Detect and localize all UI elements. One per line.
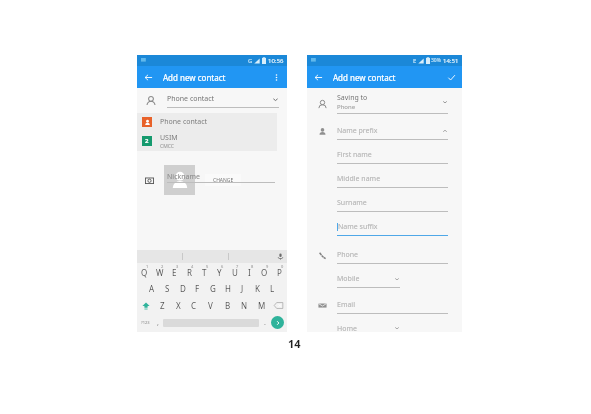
- button[interactable]: Mobile: [307, 269, 462, 293]
- button[interactable]: A: [144, 280, 160, 297]
- staticText: 3: [176, 264, 179, 269]
- button[interactable]: 8: [242, 263, 257, 280]
- button[interactable]: M: [253, 297, 270, 314]
- button[interactable]: Voice input: [274, 250, 287, 263]
- staticText: USIM: [160, 133, 178, 143]
- button[interactable]: Email: [307, 295, 462, 319]
- button[interactable]: D: [175, 280, 190, 297]
- button[interactable]: ?123: [137, 314, 153, 331]
- staticText: 8: [251, 264, 254, 269]
- staticText: 14:51: [443, 57, 459, 65]
- button[interactable]: Phone contact: [137, 113, 277, 131]
- staticText: L: [270, 283, 275, 294]
- staticText: B: [225, 300, 231, 311]
- staticText: Email: [337, 300, 448, 310]
- staticText: K: [255, 283, 260, 294]
- button[interactable]: B: [219, 297, 236, 314]
- staticText: CMCC: [160, 143, 174, 150]
- staticText: .: [264, 318, 266, 328]
- button[interactable]: Back: [307, 66, 329, 88]
- staticText: 2: [161, 264, 164, 269]
- staticText: S: [165, 283, 170, 294]
- staticText: Mobile: [337, 274, 394, 284]
- staticText: Phone: [337, 103, 356, 111]
- staticText: 4: [191, 264, 194, 269]
- staticText: C: [191, 300, 197, 311]
- staticText: Nickname: [167, 172, 200, 182]
- staticText: E: [172, 267, 177, 278]
- button[interactable]: 4: [182, 263, 197, 280]
- staticText: F: [195, 283, 200, 294]
- staticText: 10:56: [268, 57, 284, 65]
- button[interactable]: ,: [153, 314, 163, 331]
- staticText: D: [180, 283, 186, 294]
- button[interactable]: Middle name: [307, 169, 462, 193]
- button[interactable]: H: [220, 280, 235, 297]
- button[interactable]: X: [170, 297, 186, 314]
- button[interactable]: Saving to: [307, 93, 462, 115]
- button[interactable]: 6: [212, 263, 227, 280]
- button[interactable]: F: [190, 280, 205, 297]
- staticText: 5: [206, 264, 209, 269]
- staticText: Add new contact: [163, 72, 265, 83]
- button[interactable]: Backspace: [270, 297, 287, 314]
- button[interactable]: CHANGE: [205, 174, 241, 186]
- staticText: V: [208, 300, 213, 311]
- staticText: Y: [217, 267, 222, 278]
- button[interactable]: First name: [307, 145, 462, 169]
- button[interactable]: G: [205, 280, 220, 297]
- button[interactable]: J: [235, 280, 250, 297]
- staticText: O: [261, 267, 268, 278]
- staticText: A: [149, 283, 155, 294]
- staticText: 9: [266, 264, 269, 269]
- staticText: ,: [157, 318, 159, 328]
- button[interactable]: N: [236, 297, 253, 314]
- button[interactable]: Phone contact: [137, 88, 287, 114]
- button[interactable]: 9: [257, 263, 272, 280]
- button[interactable]: Back: [137, 66, 159, 88]
- staticText: CHANGE: [213, 177, 234, 184]
- button[interactable]: Z: [154, 297, 170, 314]
- button[interactable]: Name prefix: [307, 121, 462, 145]
- staticText: 30%: [431, 57, 441, 64]
- button[interactable]: Home: [307, 319, 462, 332]
- staticText: Phone: [337, 250, 448, 260]
- staticText: 7: [236, 264, 239, 269]
- button[interactable]: 7: [227, 263, 242, 280]
- button[interactable]: 2: [152, 263, 167, 280]
- staticText: Q: [141, 267, 148, 278]
- staticText: Name suffix: [338, 222, 448, 232]
- button[interactable]: More options: [265, 66, 287, 88]
- button[interactable]: Shift: [137, 297, 154, 314]
- staticText: E: [413, 57, 417, 65]
- staticText: Home: [337, 324, 394, 332]
- button[interactable]: 5: [197, 263, 212, 280]
- button[interactable]: 1: [137, 263, 152, 280]
- button[interactable]: Save: [440, 66, 462, 88]
- staticText: Z: [160, 300, 165, 311]
- button[interactable]: Surname: [307, 193, 462, 217]
- staticText: U: [232, 267, 238, 278]
- staticText: Surname: [337, 198, 448, 208]
- button[interactable]: L: [265, 280, 280, 297]
- staticText: Saving to: [337, 93, 368, 103]
- staticText: 1: [146, 264, 149, 269]
- staticText: T: [202, 267, 207, 278]
- button[interactable]: Next: [271, 316, 284, 329]
- staticText: First name: [337, 150, 448, 160]
- button[interactable]: 2: [137, 131, 277, 151]
- staticText: 14: [288, 336, 301, 351]
- button[interactable]: V: [202, 297, 219, 314]
- button[interactable]: 0: [272, 263, 287, 280]
- staticText: 2: [145, 137, 149, 145]
- button[interactable]: K: [250, 280, 265, 297]
- button[interactable]: C: [186, 297, 202, 314]
- button[interactable]: 3: [167, 263, 182, 280]
- button[interactable]: S: [160, 280, 175, 297]
- button[interactable]: Name suffix: [307, 217, 462, 241]
- staticText: Phone contact: [167, 94, 272, 104]
- button[interactable]: Phone: [307, 245, 462, 269]
- staticText: 0: [281, 264, 284, 269]
- button[interactable]: .: [259, 314, 271, 331]
